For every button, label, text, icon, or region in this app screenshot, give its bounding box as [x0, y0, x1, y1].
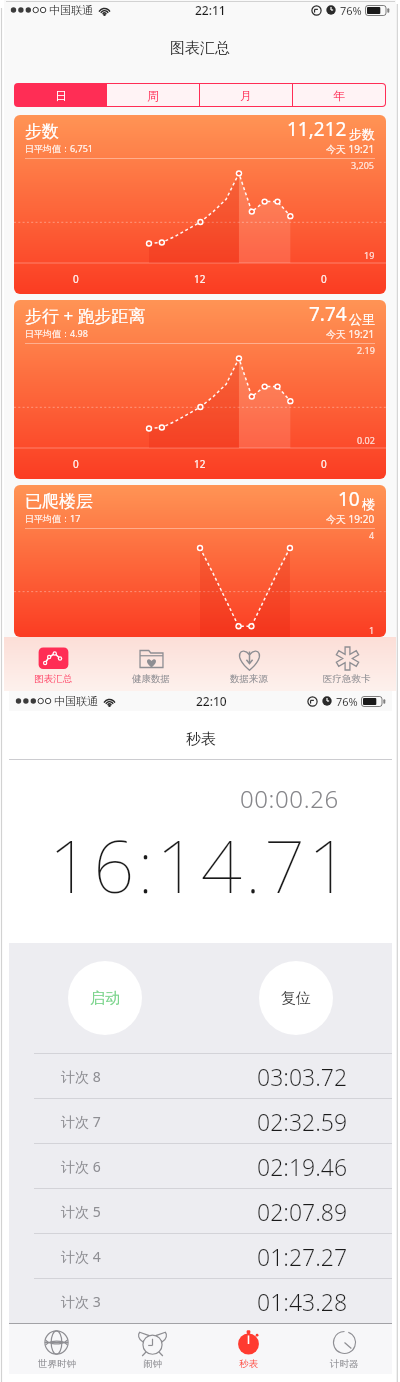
staticText: 02:19.46 — [257, 1151, 348, 1182]
staticText: 22:11 — [195, 2, 226, 18]
staticText: 计次 5 — [61, 1202, 101, 1221]
staticText: 12 — [194, 457, 206, 471]
staticText: 复位 — [281, 989, 311, 1008]
staticText: 秒表 — [186, 730, 216, 749]
staticText: 月 — [240, 88, 252, 103]
button[interactable]: 计次 3 — [61, 1279, 348, 1323]
button[interactable]: 秒表 — [200, 1324, 296, 1374]
button[interactable]: 计次 4 — [61, 1234, 348, 1278]
staticText: 图表汇总 — [34, 673, 72, 685]
button[interactable]: 月 — [200, 84, 292, 106]
staticText: 数据来源 — [230, 673, 268, 685]
staticText: 0 — [73, 457, 79, 471]
button[interactable]: 步行 + 跑步距离 — [14, 300, 386, 479]
staticText: 今天 19:21 — [326, 142, 375, 156]
staticText: 闹钟 — [143, 1358, 162, 1370]
staticText: 已爬楼层 — [25, 491, 93, 512]
button[interactable]: 计次 8 — [61, 1054, 348, 1098]
staticText: 中国联通 — [54, 694, 98, 708]
staticText: 00:00.26 — [240, 782, 339, 815]
staticText: 0 — [321, 457, 327, 471]
staticText: 3,205 — [351, 159, 375, 171]
staticText: 步数 — [25, 121, 59, 142]
staticText: 日平均值：4.98 — [25, 327, 88, 339]
staticText: 日平均值：17 — [25, 512, 81, 524]
staticText: 今天 19:21 — [326, 327, 375, 341]
staticText: 步行 + 跑步距离 — [25, 304, 146, 327]
button[interactable]: 启动 — [68, 961, 142, 1035]
staticText: 日平均值：6,751 — [25, 142, 94, 154]
button[interactable]: 图表汇总 — [4, 637, 102, 691]
button[interactable]: 年 — [293, 84, 385, 106]
button[interactable]: 医疗急救卡 — [298, 637, 396, 691]
staticText: 76% — [336, 694, 358, 709]
staticText: 12 — [194, 272, 206, 286]
staticText: 启动 — [90, 989, 120, 1008]
staticText: 年 — [333, 88, 345, 103]
button[interactable]: 复位 — [259, 961, 333, 1035]
staticText: 76% — [340, 3, 362, 18]
staticText: 计次 8 — [61, 1067, 101, 1086]
staticText: 03:03.72 — [257, 1061, 348, 1092]
staticText: 1 — [369, 624, 375, 636]
staticText: 16:14.71 — [49, 816, 353, 914]
staticText: 健康数据 — [132, 673, 170, 685]
button[interactable]: 步数 — [14, 115, 386, 294]
staticText: 01:27.27 — [257, 1241, 348, 1272]
staticText: 11,212 — [287, 116, 347, 142]
staticText: 0 — [321, 272, 327, 286]
staticText: 计次 6 — [61, 1157, 101, 1176]
staticText: 楼 — [362, 496, 375, 512]
staticText: 世界时钟 — [38, 1358, 76, 1370]
button[interactable]: 计次 7 — [61, 1099, 348, 1143]
staticText: 计次 4 — [61, 1247, 101, 1266]
staticText: 7.74 — [309, 301, 347, 327]
staticText: 周 — [147, 88, 159, 103]
staticText: 医疗急救卡 — [323, 673, 371, 685]
staticText: 02:32.59 — [257, 1106, 348, 1137]
staticText: 10 — [338, 486, 360, 512]
button[interactable]: 计次 6 — [61, 1144, 348, 1188]
button[interactable]: 数据来源 — [200, 637, 298, 691]
button[interactable]: 闹钟 — [104, 1324, 200, 1374]
staticText: 秒表 — [239, 1358, 258, 1370]
staticText: 日 — [55, 88, 67, 103]
button[interactable]: 日 — [15, 84, 106, 106]
staticText: 22:10 — [196, 693, 227, 709]
staticText: 19 — [364, 249, 375, 261]
staticText: 计次 7 — [61, 1112, 101, 1131]
staticText: 02:07.89 — [257, 1196, 348, 1227]
staticText: 计次 3 — [61, 1292, 101, 1311]
button[interactable]: 周 — [107, 84, 199, 106]
button[interactable]: 健康数据 — [102, 637, 200, 691]
staticText: 4 — [369, 529, 375, 541]
staticText: 2.19 — [357, 344, 375, 356]
staticText: 图表汇总 — [170, 39, 230, 58]
staticText: 0 — [73, 272, 79, 286]
button[interactable]: 世界时钟 — [9, 1324, 104, 1374]
staticText: 今天 19:20 — [326, 512, 375, 526]
staticText: 计时器 — [330, 1358, 359, 1370]
button[interactable]: 已爬楼层 — [14, 485, 386, 637]
staticText: 0.02 — [357, 434, 375, 446]
staticText: 中国联通 — [49, 3, 93, 17]
staticText: 公里 — [349, 311, 375, 327]
staticText: 01:43.28 — [257, 1286, 348, 1317]
button[interactable]: 计时器 — [296, 1324, 392, 1374]
staticText: 步数 — [349, 126, 375, 142]
button[interactable]: 计次 5 — [61, 1189, 348, 1233]
